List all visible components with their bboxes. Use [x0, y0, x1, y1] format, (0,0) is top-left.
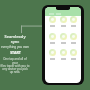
button[interactable]: App 6	[70, 33, 77, 44]
button[interactable]: App 2	[60, 16, 67, 27]
staticText: One tap and all of your files travel wit…	[0, 57, 30, 73]
button[interactable]: App 5	[60, 33, 67, 44]
staticText: START	[10, 50, 21, 55]
staticText: Seamlessly sync	[0, 34, 30, 44]
button[interactable]: App 8	[60, 49, 67, 60]
button[interactable]: App 4	[49, 33, 56, 44]
button[interactable]: App 9	[70, 49, 77, 60]
button[interactable]: App 3	[70, 16, 77, 27]
button[interactable]: App 7	[49, 49, 56, 60]
button[interactable]: App 1	[49, 16, 56, 27]
staticText: everything you own	[1, 45, 29, 49]
